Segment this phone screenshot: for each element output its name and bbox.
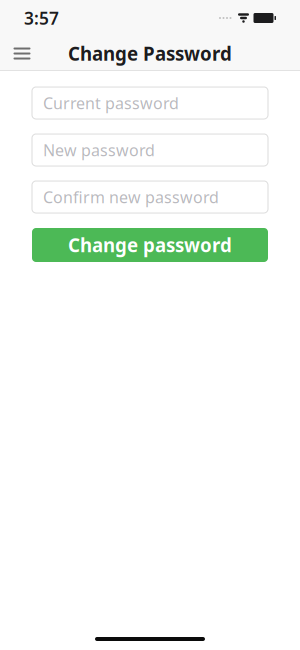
staticText: Current password <box>43 92 179 114</box>
button[interactable]: Current password <box>32 87 268 119</box>
button[interactable]: New password <box>32 134 268 166</box>
button[interactable]: Menu <box>5 36 39 70</box>
staticText: Change Password <box>68 41 232 66</box>
staticText: Change password <box>68 233 232 257</box>
staticText: Confirm new password <box>43 186 219 208</box>
staticText: 3:57 <box>24 6 59 29</box>
button[interactable]: Confirm new password <box>32 181 268 213</box>
button[interactable]: Change password <box>32 228 268 262</box>
staticText: New password <box>43 139 155 161</box>
